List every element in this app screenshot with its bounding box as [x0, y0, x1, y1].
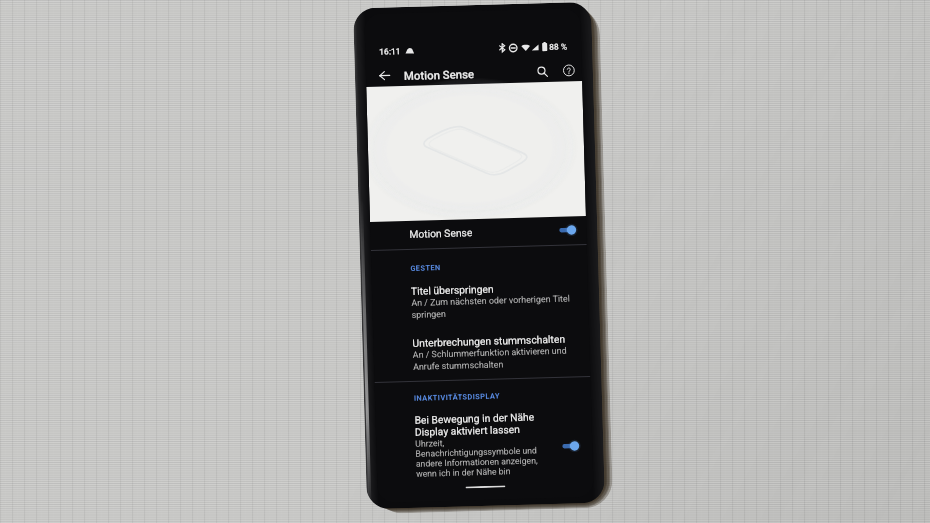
staticText: An / Zum nächsten oder vorherigen Titel … — [411, 293, 575, 320]
staticText: Unterbrechungen stummschalten — [412, 332, 575, 349]
button[interactable]: Bei Bewegung in der Nähe Display aktivie… — [375, 409, 593, 480]
button[interactable]: Motion Sense — [370, 215, 587, 249]
staticText: Bei Bewegung in der Nähe Display aktivie… — [414, 410, 541, 438]
staticText: Uhrzeit, Benachrichtigungssymbole und an… — [415, 435, 542, 479]
button[interactable]: Hilfe — [558, 59, 580, 82]
staticText: Titel überspringen — [411, 280, 574, 297]
staticText: 88 % — [549, 41, 567, 52]
staticText: INAKTIVITÄTSDISPLAY — [414, 391, 500, 403]
staticText: Motion Sense — [409, 226, 472, 240]
staticText: An / Schlummerfunktion aktivieren und An… — [413, 345, 576, 372]
button[interactable]: Titel überspringen — [372, 280, 589, 321]
staticText: Motion Sense — [404, 67, 475, 82]
staticText: 16:11 — [379, 46, 401, 57]
staticText: GESTEN — [410, 263, 441, 273]
button[interactable]: Unterbrechungen stummschalten — [373, 332, 590, 373]
button[interactable]: Suche — [531, 60, 553, 82]
button[interactable]: Zurück — [373, 64, 395, 87]
